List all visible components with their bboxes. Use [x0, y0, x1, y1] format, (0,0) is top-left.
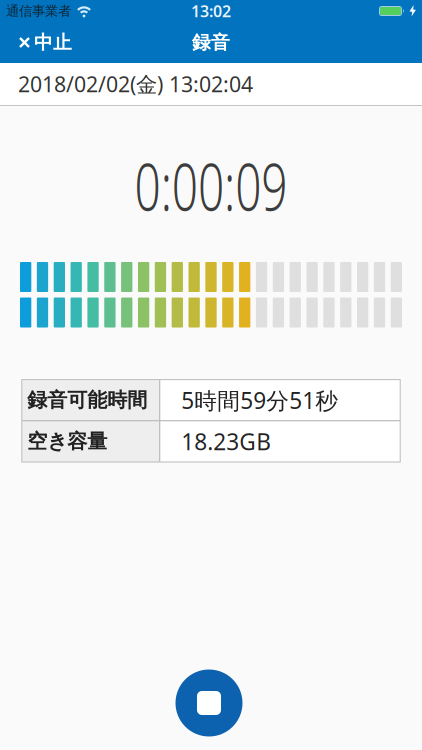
- staticText: 録音可能時間: [27, 388, 147, 412]
- button[interactable]: 停止: [175, 669, 242, 736]
- staticText: 通信事業者: [6, 3, 71, 19]
- staticText: 0:00:09: [100, 141, 322, 229]
- staticText: 5時間59分51秒: [181, 385, 338, 415]
- button[interactable]: 中止: [0, 22, 82, 63]
- staticText: 録音: [192, 31, 230, 54]
- staticText: 13:02: [191, 0, 231, 22]
- staticText: 2018/02/02(金) 13:02:04: [18, 70, 253, 98]
- staticText: 空き容量: [27, 429, 107, 454]
- staticText: 18.23GB: [181, 426, 271, 456]
- staticText: 中止: [34, 31, 72, 54]
